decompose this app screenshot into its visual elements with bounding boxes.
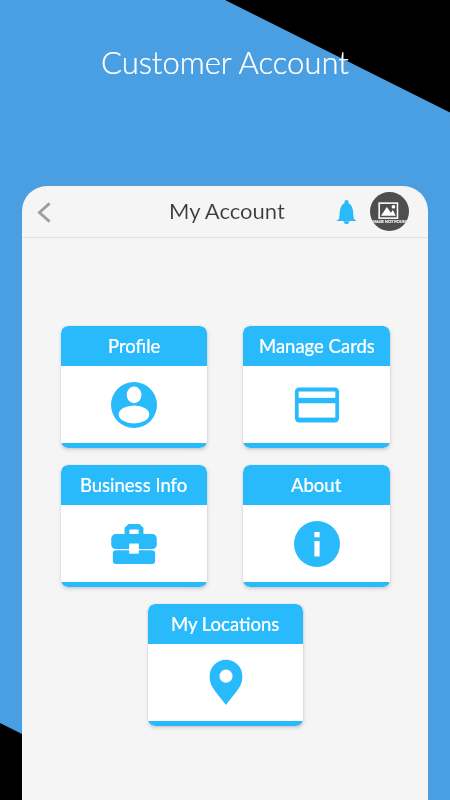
staticText: Manage Cards [259,335,375,357]
button[interactable]: Notifications [329,195,363,229]
staticText: My Account [169,197,285,223]
button[interactable]: Profile picture [370,192,409,231]
staticText: Business Info [80,474,188,496]
button[interactable]: About [243,465,390,587]
staticText: My Locations [171,613,280,635]
staticText: IMAGE NOT FOUND [371,219,409,224]
button[interactable]: Back [23,191,65,233]
staticText: Profile [108,335,161,357]
button[interactable]: Business Info [61,465,207,587]
button[interactable]: Manage Cards [243,326,390,448]
staticText: About [291,474,342,496]
staticText: Customer Account [101,43,349,80]
button[interactable]: My Locations [148,604,303,726]
button[interactable]: Profile [61,326,207,448]
